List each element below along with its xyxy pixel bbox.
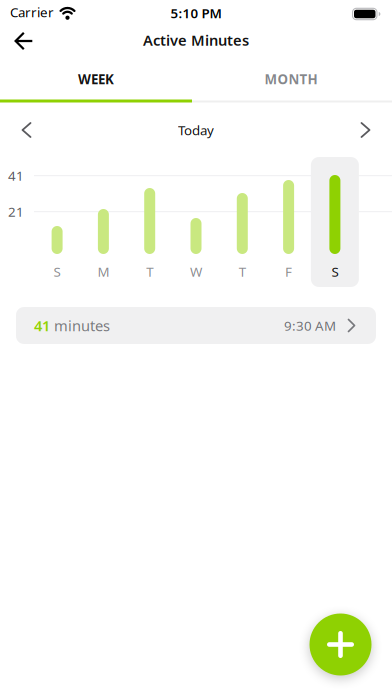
button[interactable]: Back <box>0 24 34 57</box>
staticText: minutes <box>50 316 110 335</box>
staticText: T <box>146 263 153 280</box>
button[interactable]: 41 <box>16 307 376 344</box>
staticText: Active Minutes <box>143 30 249 50</box>
staticText: Today <box>178 121 214 139</box>
staticText: W <box>190 263 202 280</box>
staticText: 9:30 AM <box>284 317 336 334</box>
staticText: F <box>285 263 292 280</box>
staticText: M <box>97 263 109 280</box>
staticText: 41 <box>34 316 50 335</box>
staticText: MONTH <box>264 70 317 88</box>
staticText: 41 <box>8 167 24 184</box>
staticText: Carrier <box>10 3 54 21</box>
button[interactable]: Next week <box>350 111 381 148</box>
button[interactable]: Previous week <box>11 111 42 148</box>
staticText: 21 <box>8 203 24 220</box>
staticText: WEEK <box>78 70 114 88</box>
staticText: 5:10 PM <box>170 4 221 22</box>
staticText: T <box>239 263 246 280</box>
staticText: S <box>54 263 61 280</box>
button[interactable]: Add <box>309 613 371 675</box>
button[interactable]: MONTH <box>193 58 389 100</box>
staticText: S <box>331 263 338 280</box>
button[interactable]: WEEK <box>0 58 194 100</box>
